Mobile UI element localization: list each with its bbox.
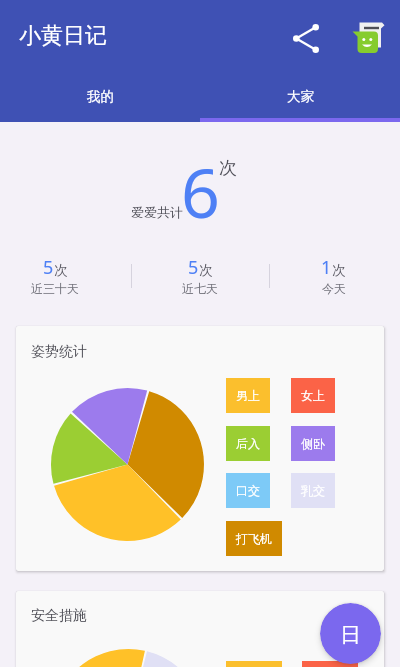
staticText: 侧卧 bbox=[301, 436, 325, 451]
staticText: 6 bbox=[181, 145, 220, 225]
staticText: 次 bbox=[199, 262, 213, 279]
button[interactable]: 1 bbox=[288, 255, 378, 296]
staticText: 小黄日记 bbox=[19, 22, 107, 50]
button[interactable]: 我的 bbox=[0, 70, 200, 122]
button[interactable]: 5 bbox=[155, 255, 245, 296]
staticText: 口交 bbox=[236, 483, 260, 498]
staticText: 今天 bbox=[322, 281, 346, 296]
button[interactable]: 避孕套 bbox=[302, 661, 358, 667]
staticText: 次 bbox=[332, 262, 346, 279]
button[interactable]: 男上 bbox=[226, 378, 270, 413]
staticText: 我的 bbox=[87, 88, 114, 105]
button[interactable]: 5 bbox=[10, 255, 100, 296]
staticText: 打飞机 bbox=[236, 531, 272, 546]
button[interactable]: New diary entry bbox=[320, 603, 381, 664]
staticText: 近三十天 bbox=[31, 281, 79, 296]
staticText: 次 bbox=[219, 157, 237, 180]
staticText: 1 bbox=[321, 255, 332, 280]
button[interactable]: 女上 bbox=[291, 378, 335, 413]
button[interactable]: 乳交 bbox=[291, 473, 335, 508]
staticText: 近七天 bbox=[182, 281, 218, 296]
button[interactable]: 口交 bbox=[226, 473, 270, 508]
staticText: 姿势统计 bbox=[31, 343, 87, 361]
button[interactable]: 打飞机 bbox=[226, 521, 282, 556]
button[interactable]: 侧卧 bbox=[291, 426, 335, 461]
staticText: 后入 bbox=[236, 436, 260, 451]
staticText: 乳交 bbox=[301, 483, 325, 498]
button[interactable]: Messages bbox=[345, 13, 393, 61]
staticText: 大家 bbox=[287, 88, 314, 105]
staticText: 安全措施 bbox=[31, 607, 87, 625]
staticText: 日 bbox=[340, 622, 361, 648]
button[interactable]: 大家 bbox=[200, 70, 400, 122]
button[interactable]: 后入 bbox=[226, 426, 270, 461]
staticText: 次 bbox=[54, 262, 68, 279]
staticText: 爱爱共计 bbox=[131, 204, 183, 220]
button[interactable]: Share bbox=[282, 14, 330, 62]
staticText: 男上 bbox=[236, 388, 260, 403]
staticText: 女上 bbox=[301, 388, 325, 403]
staticText: 5 bbox=[43, 255, 54, 280]
staticText: 5 bbox=[188, 255, 199, 280]
